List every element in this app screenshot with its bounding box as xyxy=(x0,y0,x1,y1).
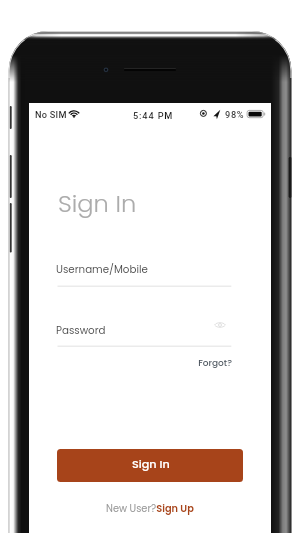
staticText: Password xyxy=(56,323,106,337)
button[interactable]: Forgot? xyxy=(195,357,232,370)
staticText: Sign In xyxy=(58,187,137,221)
staticText: 98% xyxy=(225,109,245,120)
button[interactable]: Sign In xyxy=(57,449,243,482)
staticText: New User?Sign Up xyxy=(106,502,194,516)
button[interactable]: Show password xyxy=(210,315,230,335)
button[interactable]: Password xyxy=(56,323,196,340)
staticText: Forgot? xyxy=(195,357,232,370)
button[interactable]: New User?Sign Up xyxy=(100,502,200,516)
staticText: Sign In xyxy=(132,456,170,472)
staticText: Username/Mobile xyxy=(56,262,148,276)
staticText: 5:44 PM xyxy=(133,110,174,121)
staticText: No SIM xyxy=(35,109,67,120)
button[interactable]: Username/Mobile xyxy=(56,262,196,279)
